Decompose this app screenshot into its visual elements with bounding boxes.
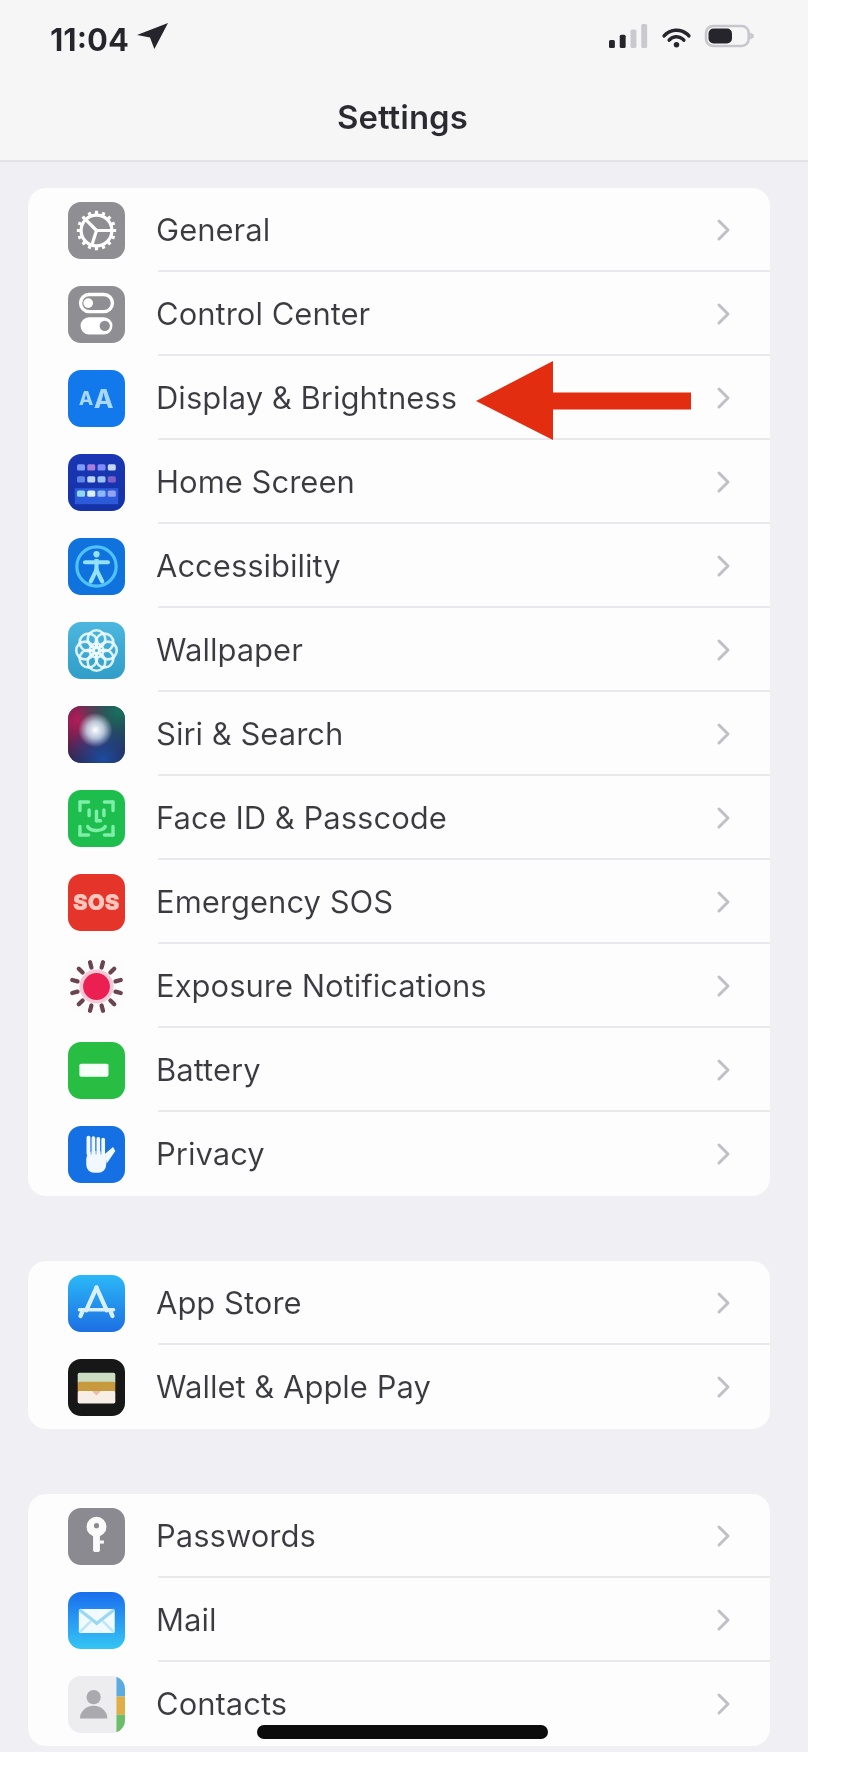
staticText: 11:04 bbox=[50, 21, 129, 59]
staticText: Face ID & Passcode bbox=[156, 799, 447, 837]
staticText: A bbox=[79, 387, 94, 410]
button[interactable]: Face ID & Passcode bbox=[28, 776, 770, 860]
other: Annotation arrow bbox=[470, 358, 691, 444]
button[interactable]: Privacy bbox=[28, 1112, 770, 1196]
staticText: Wallpaper bbox=[156, 631, 303, 669]
button[interactable]: Control Center bbox=[28, 272, 770, 356]
staticText: Privacy bbox=[156, 1135, 265, 1173]
button[interactable]: Wallpaper bbox=[28, 608, 770, 692]
staticText: Passwords bbox=[156, 1517, 316, 1555]
staticText: App Store bbox=[156, 1284, 302, 1322]
staticText: Wallet & Apple Pay bbox=[156, 1368, 431, 1406]
staticText: Emergency SOS bbox=[156, 883, 394, 921]
staticText: Accessibility bbox=[156, 547, 341, 585]
button[interactable]: Exposure Notifications bbox=[28, 944, 770, 1028]
staticText: Siri & Search bbox=[156, 715, 344, 753]
staticText: General bbox=[156, 211, 271, 249]
button[interactable]: Passwords bbox=[28, 1494, 770, 1578]
button[interactable]: App Store bbox=[28, 1261, 770, 1345]
staticText: Control Center bbox=[156, 295, 371, 333]
button[interactable]: Battery bbox=[28, 1028, 770, 1112]
button[interactable]: Mail bbox=[28, 1578, 770, 1662]
staticText: SOS bbox=[73, 889, 120, 916]
staticText: Display & Brightness bbox=[156, 379, 458, 417]
button[interactable]: A bbox=[28, 356, 770, 440]
button[interactable]: Siri & Search bbox=[28, 692, 770, 776]
button[interactable]: SOS bbox=[28, 860, 770, 944]
staticText: Settings bbox=[337, 97, 468, 137]
staticText: Contacts bbox=[156, 1685, 288, 1723]
staticText: Battery bbox=[156, 1051, 261, 1089]
button[interactable]: Accessibility bbox=[28, 524, 770, 608]
button[interactable]: Wallet & Apple Pay bbox=[28, 1345, 770, 1429]
button[interactable]: General bbox=[28, 188, 770, 272]
staticText: A bbox=[94, 383, 114, 414]
button[interactable]: Contacts bbox=[28, 1662, 770, 1746]
staticText: Home Screen bbox=[156, 463, 355, 501]
staticText: Exposure Notifications bbox=[156, 967, 487, 1005]
button[interactable]: Home Screen bbox=[28, 440, 770, 524]
staticText: Mail bbox=[156, 1601, 217, 1639]
